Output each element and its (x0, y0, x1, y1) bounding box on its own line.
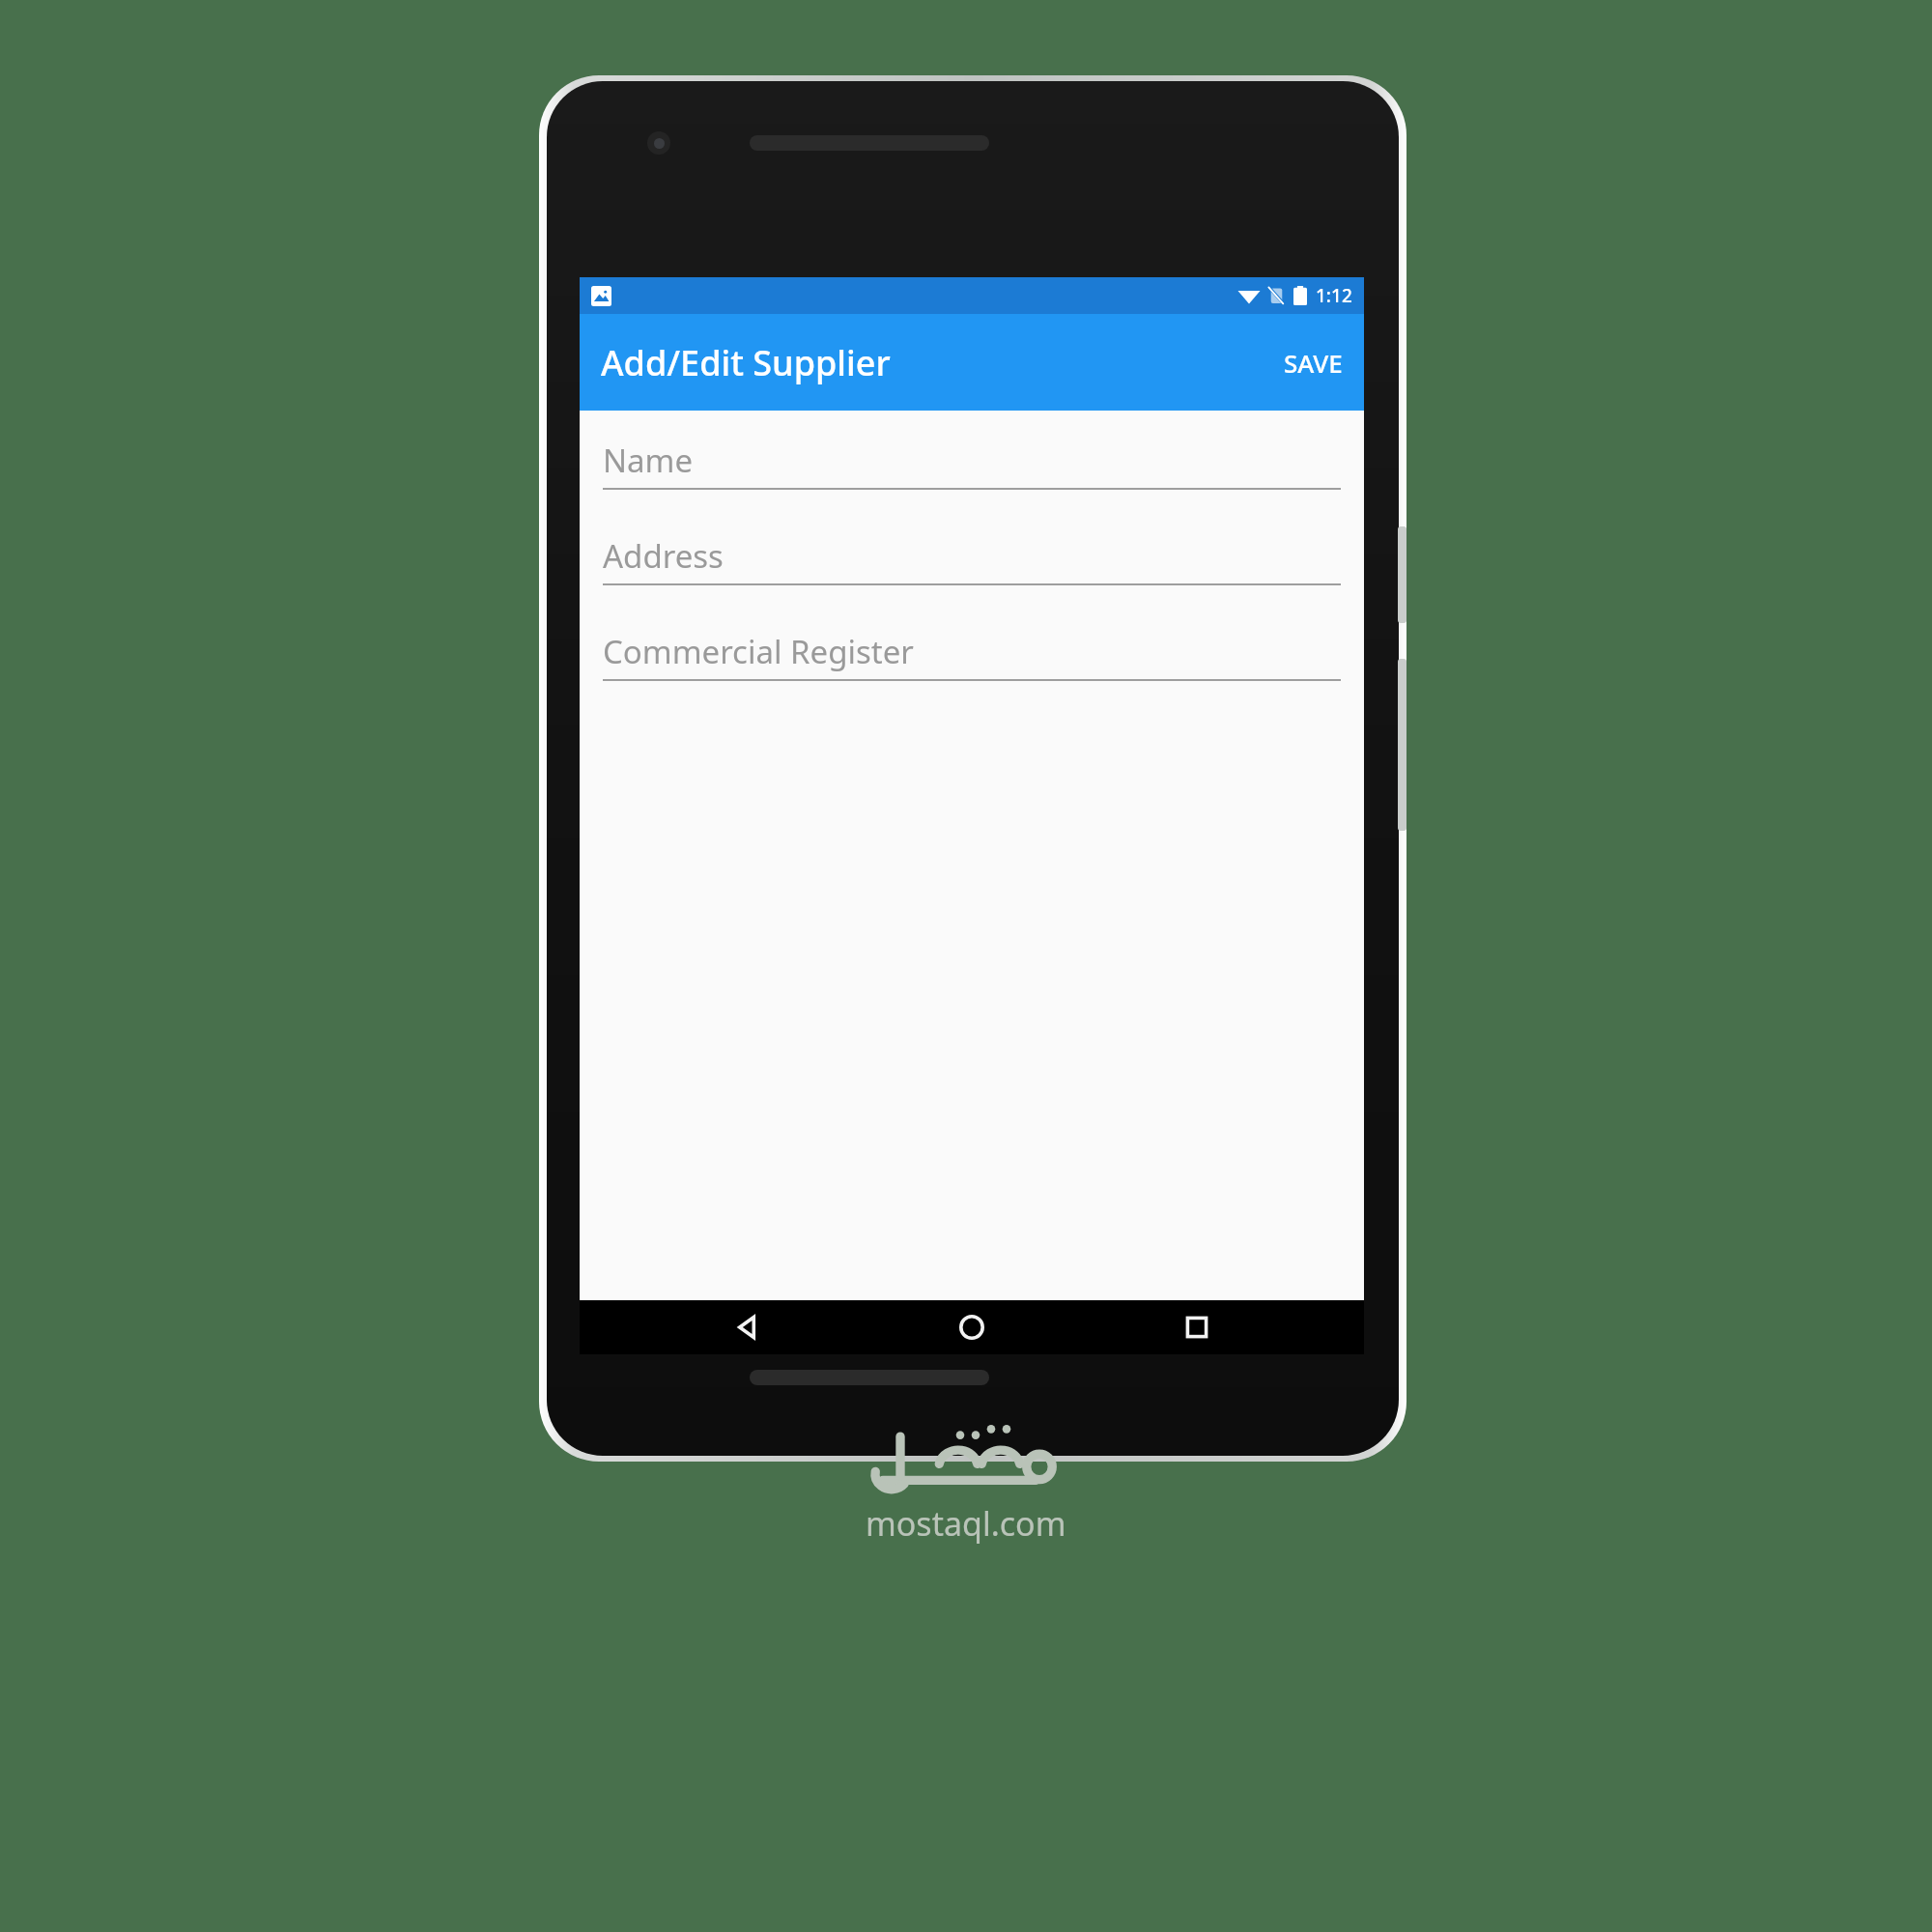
button[interactable]: Back (689, 1300, 805, 1354)
button[interactable]: Home (914, 1300, 1030, 1354)
button[interactable]: Recent apps (1139, 1300, 1255, 1354)
staticText: mostaql.com (866, 1501, 1066, 1546)
staticText: Add/Edit Supplier (601, 339, 891, 386)
other: Image notification (591, 286, 611, 306)
staticText: SAVE (1284, 346, 1343, 380)
staticText: Address (603, 534, 724, 578)
button[interactable]: Commercial Register (603, 629, 1341, 681)
staticText: Commercial Register (603, 630, 914, 673)
staticText: Name (603, 439, 694, 482)
button[interactable]: SAVE (1268, 334, 1358, 391)
button[interactable]: Name (603, 438, 1341, 490)
staticText: 1:12 (1316, 283, 1352, 308)
button[interactable]: Address (603, 533, 1341, 585)
